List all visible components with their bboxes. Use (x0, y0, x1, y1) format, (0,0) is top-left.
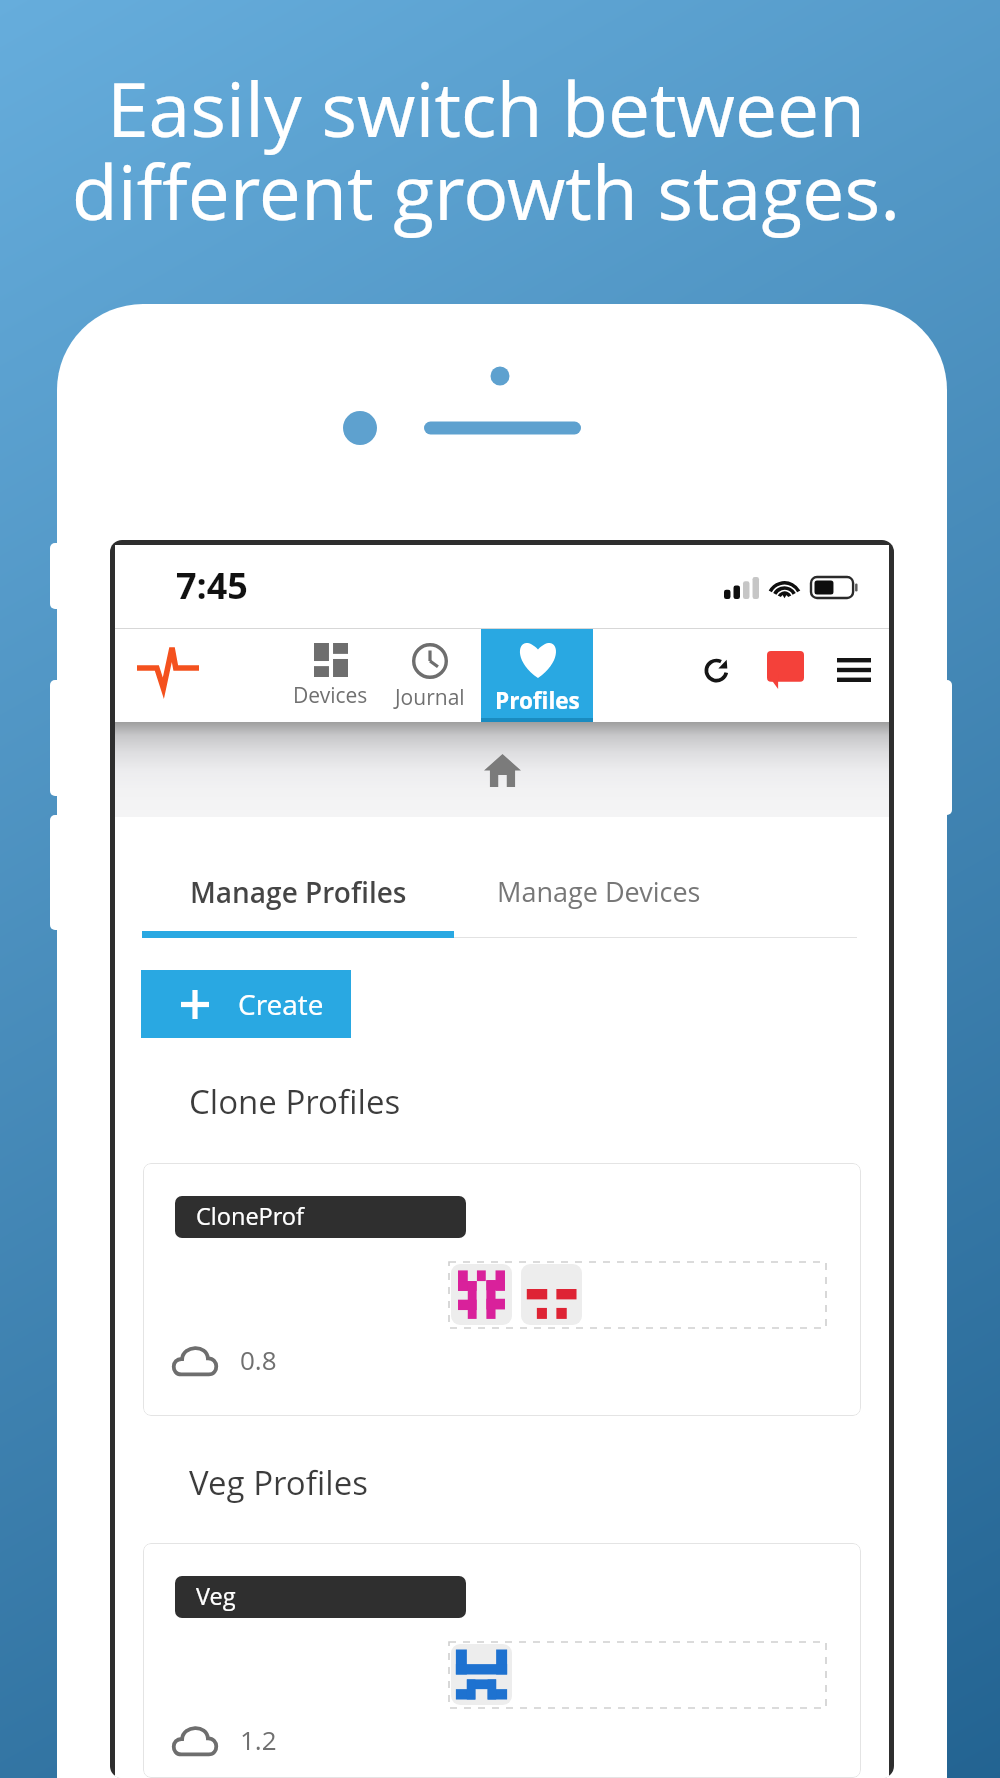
staticText: Journal (395, 683, 465, 712)
button[interactable]: Journal (382, 629, 478, 722)
staticText: 0.8 (240, 1342, 277, 1377)
staticText: Clone Profiles (189, 1079, 401, 1124)
button[interactable]: Devices (278, 629, 382, 722)
button[interactable]: Refresh (684, 629, 754, 722)
button[interactable]: Manage Profiles (142, 871, 454, 912)
staticText: Veg Profiles (189, 1460, 368, 1505)
staticText: Veg (196, 1580, 236, 1612)
staticText: 1.2 (240, 1722, 277, 1757)
staticText: 7:45 (176, 561, 248, 610)
button[interactable]: Create (141, 970, 351, 1038)
staticText: Easily switch between different growth s… (0, 57, 972, 242)
staticText: CloneProf (196, 1200, 304, 1232)
button[interactable]: CloneProf (143, 1163, 861, 1416)
staticText: Profiles (495, 685, 580, 716)
button[interactable]: Profiles (481, 629, 593, 722)
button[interactable]: App home (125, 629, 210, 722)
staticText: Create (238, 985, 324, 1023)
staticText: Manage Devices (497, 873, 701, 910)
button[interactable]: Menu (819, 629, 889, 722)
button[interactable]: Manage Devices (454, 871, 744, 912)
button[interactable]: Home (479, 747, 525, 793)
button[interactable]: Messages (752, 629, 818, 722)
staticText: Manage Profiles (190, 873, 407, 911)
button[interactable]: Veg (143, 1543, 861, 1778)
staticText: Devices (293, 681, 368, 710)
